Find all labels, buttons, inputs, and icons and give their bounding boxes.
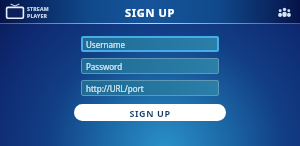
- staticText: Username: [86, 39, 125, 50]
- button[interactable]: Password: [81, 58, 219, 74]
- button[interactable]: Username: [81, 36, 219, 52]
- button[interactable]: IPTV Stream Player: [5, 4, 49, 20]
- button[interactable]: http://URL/port: [81, 80, 219, 96]
- staticText: Password: [86, 61, 123, 72]
- staticText: SIGN UP: [129, 107, 171, 119]
- button[interactable]: Users: [274, 2, 294, 22]
- staticText: STREAM: [27, 5, 49, 12]
- staticText: http://URL/port: [86, 83, 144, 94]
- staticText: PLAYER: [27, 12, 48, 19]
- button[interactable]: SIGN UP: [74, 104, 226, 121]
- staticText: SIGN UP: [125, 5, 176, 20]
